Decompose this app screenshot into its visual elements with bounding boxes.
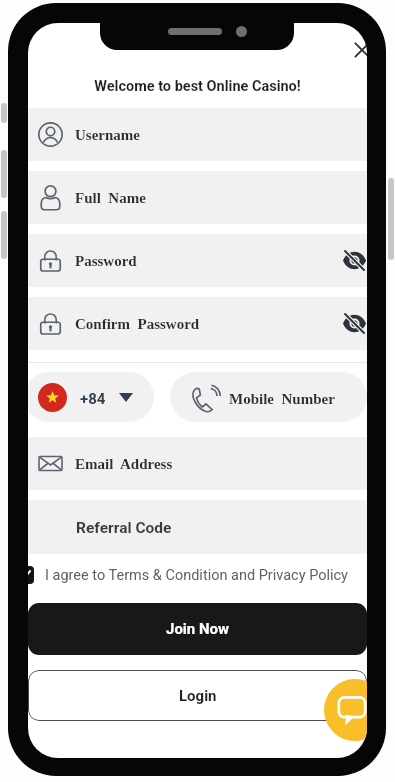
- staticText: I agree to Terms & Condition and Privacy…: [45, 567, 348, 584]
- button[interactable]: Login: [28, 670, 367, 721]
- staticText: Referral Code: [76, 519, 172, 537]
- staticText: Email Address: [75, 456, 173, 473]
- button[interactable]: Toggle password visibility: [342, 248, 367, 273]
- button[interactable]: Username: [28, 108, 367, 161]
- button[interactable]: Full Name: [28, 171, 367, 224]
- staticText: Password: [75, 253, 137, 270]
- staticText: +84: [80, 390, 106, 408]
- staticText: Welcome to best Online Casino!: [28, 78, 367, 95]
- staticText: Full Name: [75, 190, 146, 207]
- button[interactable]: Email Address: [28, 437, 367, 490]
- button[interactable]: Toggle password visibility: [342, 311, 367, 336]
- button[interactable]: Chat support: [324, 679, 367, 741]
- button[interactable]: Mobile Number: [170, 372, 367, 422]
- staticText: Login: [179, 687, 217, 705]
- button[interactable]: Close: [348, 36, 367, 64]
- staticText: Username: [75, 127, 140, 144]
- button[interactable]: Confirm Password: [28, 297, 367, 350]
- button[interactable]: Join Now: [28, 603, 367, 655]
- button[interactable]: +84: [28, 372, 154, 422]
- staticText: Confirm Password: [75, 316, 200, 333]
- button[interactable]: Referral Code: [28, 500, 367, 554]
- staticText: Join Now: [166, 620, 230, 638]
- button[interactable]: I agree to Terms & Condition and Privacy…: [28, 562, 355, 588]
- button[interactable]: Password: [28, 234, 367, 287]
- staticText: Mobile Number: [229, 391, 335, 408]
